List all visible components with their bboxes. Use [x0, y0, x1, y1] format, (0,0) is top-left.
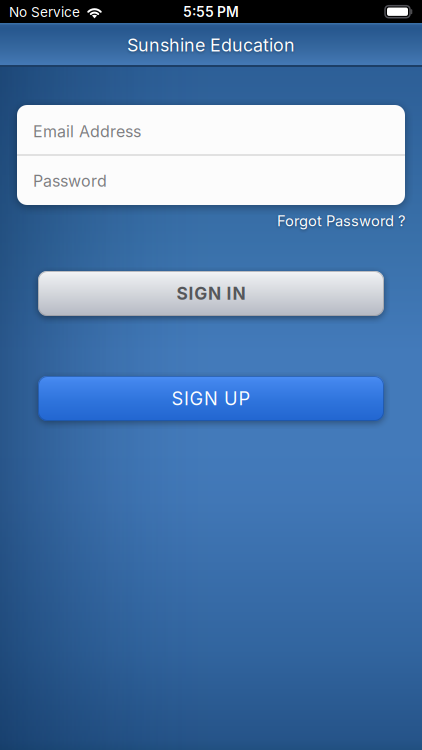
- staticText: Forgot Password ?: [277, 212, 405, 230]
- staticText: SIGN IN: [177, 283, 245, 304]
- staticText: SIGN UP: [171, 387, 250, 409]
- staticText: 5:55 PM: [183, 4, 239, 20]
- button[interactable]: Forgot Password ?: [277, 212, 405, 230]
- staticText: No Service: [9, 4, 80, 20]
- staticText: Email Address: [33, 122, 141, 141]
- button[interactable]: SIGN IN: [38, 271, 384, 316]
- button[interactable]: Password: [17, 156, 405, 205]
- staticText: Password: [33, 171, 107, 191]
- staticText: Sunshine Education: [127, 34, 295, 56]
- button[interactable]: Email Address: [17, 107, 405, 156]
- button[interactable]: SIGN UP: [38, 376, 384, 421]
